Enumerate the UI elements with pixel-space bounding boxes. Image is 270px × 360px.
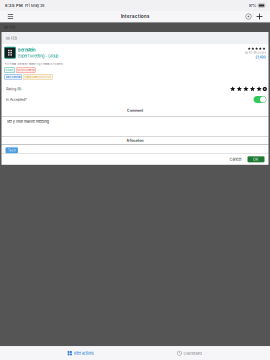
staticText: 97% (248, 3, 256, 8)
staticText: Fri May 29 (23, 3, 44, 8)
button[interactable]: Tech (5, 147, 18, 153)
button[interactable]: Is Accepted toggle (253, 96, 266, 103)
button[interactable]: Cancel (226, 156, 244, 163)
staticText: Allocation (126, 138, 143, 142)
button[interactable]: Dashboard (161, 347, 217, 360)
button[interactable]: Add (254, 11, 265, 22)
button[interactable]: Settings (243, 11, 254, 22)
staticText: Rating (5) (6, 87, 21, 91)
staticText: VADA (6, 69, 14, 72)
staticText: North America (17, 69, 34, 72)
staticText: Interactions (121, 14, 149, 19)
staticText: 4th Annual Bernstein Technology Innovati… (4, 62, 63, 65)
staticText: Is Accepted? (6, 97, 27, 101)
button[interactable]: Interactions (53, 347, 109, 360)
staticText: 06 FEB (4, 25, 15, 29)
staticText: Tech (8, 148, 16, 152)
staticText: Dashboard (183, 351, 201, 356)
button[interactable]: Menu (5, 11, 16, 22)
staticText: 45 Minutes (248, 51, 265, 54)
staticText: Comment (127, 108, 143, 113)
staticText: 6:35 PM (5, 3, 23, 8)
staticText: £1,400 (255, 55, 265, 59)
button[interactable]: OK (247, 156, 264, 162)
staticText: Mark Newman (6, 75, 21, 79)
staticText: Sanjay Mehrotra (CEO) (24, 75, 51, 79)
staticText: Interactions (74, 351, 94, 356)
staticText: Very informative meeting (7, 119, 49, 124)
staticText: Cancel (229, 157, 241, 161)
staticText: OK (253, 157, 259, 161)
staticText: Bernstein (18, 48, 35, 52)
staticText: 06 FEB (6, 36, 17, 41)
staticText: Expert Meeting - Group (18, 54, 58, 58)
